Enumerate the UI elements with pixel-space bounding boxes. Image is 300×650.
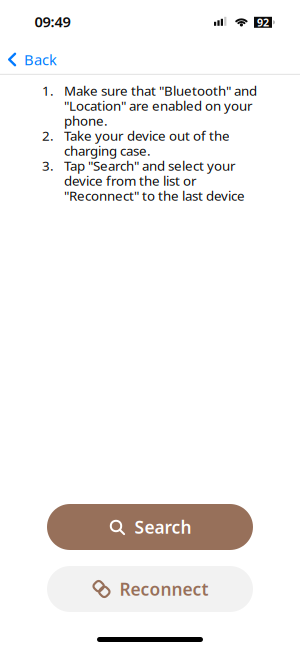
button[interactable]: Back: [0, 50, 57, 69]
staticText: device from the list or: [64, 172, 197, 189]
staticText: Reconnect: [119, 577, 208, 600]
staticText: charging case.: [64, 142, 151, 159]
staticText: Search: [134, 515, 191, 538]
staticText: Take your device out of the: [64, 127, 230, 144]
staticText: 1.: [42, 82, 54, 99]
button[interactable]: Search: [47, 504, 253, 550]
staticText: 09:49: [34, 12, 70, 31]
staticText: 92: [257, 15, 269, 29]
staticText: Tap "Search" and select your: [64, 157, 236, 174]
button[interactable]: Reconnect: [47, 566, 253, 612]
staticText: "Reconnect" to the last device: [64, 187, 245, 204]
staticText: "Location" are enabled on your: [64, 97, 253, 114]
staticText: Make sure that "Bluetooth" and: [64, 82, 257, 99]
staticText: Back: [24, 50, 57, 69]
staticText: 3.: [42, 157, 54, 174]
staticText: 2.: [42, 127, 54, 144]
staticText: phone.: [64, 112, 108, 129]
